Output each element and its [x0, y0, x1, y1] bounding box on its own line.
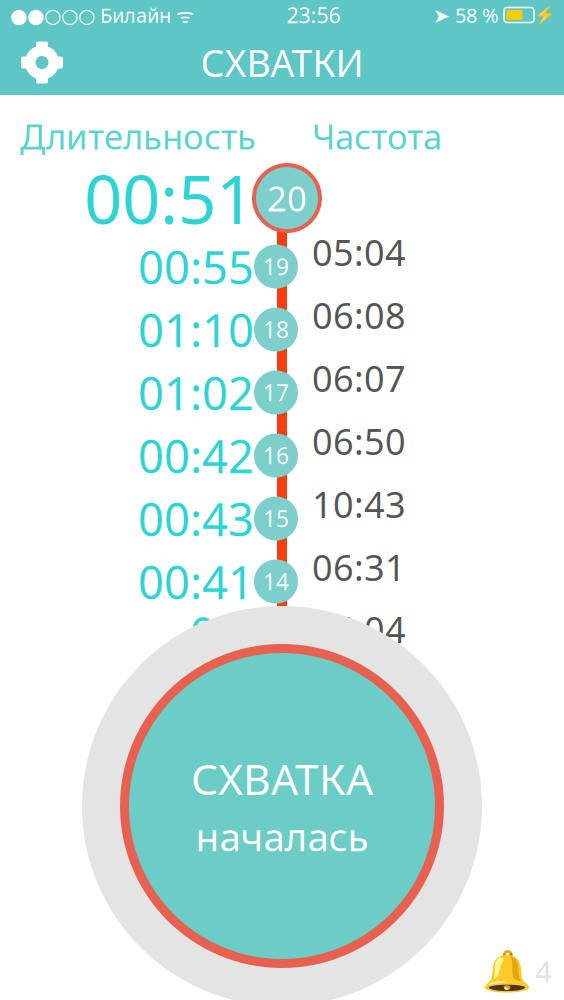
staticText: ●●○○○ Билайн ᯤ	[10, 2, 194, 28]
staticText: 01:02	[138, 362, 254, 423]
staticText: 17	[263, 377, 289, 408]
staticText: СХВАТКИ	[200, 38, 363, 87]
staticText: 15	[263, 503, 289, 534]
staticText: 00:42	[138, 425, 254, 486]
staticText: 20	[267, 175, 307, 221]
button[interactable]: Напоминания	[482, 948, 564, 1000]
staticText: 10:43	[312, 480, 406, 528]
staticText: 06:07	[312, 354, 406, 402]
staticText: 05:04	[312, 605, 406, 653]
staticText: СХВАТКА	[191, 750, 373, 807]
staticText: 16	[263, 440, 289, 471]
staticText: 00:	[190, 603, 254, 663]
staticText: 13	[263, 618, 289, 648]
staticText: 19	[263, 251, 289, 282]
staticText: 06:50	[312, 417, 406, 465]
staticText: ➤ 58 %	[433, 2, 499, 28]
staticText: 14	[263, 566, 289, 597]
button[interactable]: СХВАТКА	[117, 641, 447, 971]
button[interactable]: Настройки	[0, 30, 84, 95]
staticText: Частота	[312, 113, 442, 159]
staticText: 00:43	[138, 488, 254, 549]
staticText: 06:31	[312, 543, 406, 591]
staticText: 00:41	[138, 551, 254, 612]
staticText: 00:55	[138, 236, 254, 297]
staticText: 01:10	[138, 299, 254, 360]
staticText: 4	[535, 952, 552, 991]
staticText: 00:51	[84, 154, 254, 242]
staticText: началась	[195, 811, 368, 862]
staticText: 🔔	[482, 948, 532, 994]
staticText: Длительность	[20, 113, 256, 159]
staticText: 05:04	[312, 228, 406, 276]
staticText: 18	[263, 314, 289, 345]
staticText: 23:56	[286, 1, 340, 29]
staticText: ⚡	[534, 5, 556, 25]
staticText: 06:08	[312, 291, 406, 339]
